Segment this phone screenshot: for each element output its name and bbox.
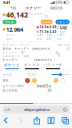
button[interactable]: Back [3,117,11,125]
staticText: レベル [2,72,11,76]
staticText: 21.05 [36,37,41,40]
button[interactable]: 予報 [10,6,16,10]
staticText: ntlayer.github.io [24,107,50,112]
staticText: 最大所持数 [2,89,17,92]
staticText: パラメータ [43,63,62,67]
staticText: 14.5 [39,25,46,29]
button[interactable]: Forward [18,117,26,125]
staticText: かけら [6,34,15,37]
staticText: 20 [47,89,51,93]
staticText: 21.8% [36,33,42,37]
staticText: 21.05 [56,37,61,40]
staticText: ボックス [24,63,40,67]
staticText: 0.08 [46,37,50,40]
staticText: ポケット [4,63,20,67]
staticText: エナジー [25,6,40,10]
staticText: 5.02 [59,25,66,30]
button[interactable]: Share [33,116,40,125]
button[interactable]: ためる [40,20,52,24]
staticText: 2個 [55,51,59,54]
staticText: ゆめのかけら [34,58,52,62]
staticText: 12,964 [6,25,23,33]
button[interactable]: ポケット [2,63,22,69]
staticText: ためる [42,20,51,24]
button[interactable]: くわしく [55,20,69,24]
staticText: 18 [57,54,59,58]
staticText: キャンディ [2,58,17,62]
staticText: きのみ キャンディ ゆめのかけら [2,47,50,50]
staticText: キャンディ 120 [2,51,23,54]
staticText: 17.7% [61,43,69,46]
staticText: 睡眠評価 [50,6,62,10]
staticText: 12/18 [6,37,11,40]
staticText: ぁあ [4,107,10,111]
staticText: 9:41 [3,0,10,5]
staticText: 素材 [2,78,8,82]
button[interactable]: パラメータ [42,63,64,69]
staticText: げんきのかけら [28,12,47,15]
button[interactable]: Bookmarks [47,116,54,125]
button[interactable]: ぁあ [2,106,69,113]
staticText: おてつだい時間 [2,84,23,88]
staticText: 71.7 [39,30,46,34]
staticText: 2.43 [49,30,56,34]
staticText: 46,142 [6,10,28,19]
button[interactable]: 睡眠評価 [50,6,62,10]
staticText: げんき [5,20,14,24]
staticText: 0.3% [46,33,51,37]
staticText: 0.2% [59,31,64,34]
button[interactable]: ボックス [22,63,42,69]
staticText: 3時間20分 [36,84,51,88]
staticText: 予報 [10,6,16,10]
button[interactable]: エナジー [25,6,40,10]
staticText: ゆめのかけら 4,200 [2,54,28,58]
staticText: 21:00 [56,43,61,46]
staticText: 3.11% [56,33,62,37]
button[interactable]: Tabs [62,117,69,125]
staticText: 20% [56,0,63,5]
staticText: おてつだい のこり [2,43,29,46]
staticText: 6.08 [49,25,56,29]
staticText: くわしく [56,20,68,24]
